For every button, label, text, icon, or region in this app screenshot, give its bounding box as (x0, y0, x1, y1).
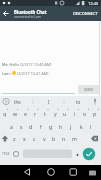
button[interactable]: m (69, 132, 79, 145)
staticText: y (54, 110, 57, 117)
staticText: u (63, 110, 67, 117)
staticText: e (24, 110, 27, 117)
button[interactable]: h (56, 120, 66, 132)
staticText: s (20, 123, 23, 130)
staticText: x (23, 135, 26, 142)
button[interactable]: e (20, 107, 30, 120)
button[interactable]: SEND (78, 85, 99, 94)
staticText: SEND (84, 87, 94, 92)
button[interactable]: n (59, 132, 69, 145)
staticText: i (74, 110, 76, 117)
staticText: d (29, 123, 33, 130)
button[interactable]: b (49, 132, 59, 145)
button[interactable]: f (36, 120, 46, 132)
staticText: q (3, 110, 7, 117)
staticText: to (76, 99, 81, 105)
button[interactable] (0, 165, 33, 180)
button[interactable]: x (19, 132, 29, 145)
button[interactable]: q (0, 107, 10, 120)
staticText: b (52, 135, 56, 142)
button[interactable]: y (50, 107, 60, 120)
staticText: Me: Hello (2, 62, 20, 67)
staticText: k (80, 123, 83, 130)
staticText: g (49, 123, 53, 130)
button[interactable]: k (76, 120, 86, 132)
button[interactable] (33, 165, 67, 180)
staticText: Bluetooth Chat (14, 9, 47, 15)
button[interactable]: o (80, 107, 90, 120)
staticText: f (40, 123, 42, 130)
staticText: w (13, 110, 18, 117)
staticText: connected to Lam (14, 15, 41, 19)
button[interactable]: i (70, 107, 80, 120)
button[interactable]: t (40, 107, 50, 120)
staticText: I (48, 99, 50, 105)
button[interactable]: DISCONNECT (73, 11, 98, 16)
staticText: z (13, 135, 16, 142)
button[interactable]: s (16, 120, 26, 132)
button[interactable] (67, 165, 101, 180)
staticText: r (34, 110, 37, 117)
staticText: p (93, 110, 97, 117)
staticText: h (59, 123, 63, 130)
button[interactable]: c (29, 132, 39, 145)
button[interactable]: d (26, 120, 36, 132)
staticText: v (43, 135, 46, 142)
button[interactable] (0, 6, 12, 21)
button[interactable] (2, 85, 75, 94)
staticText: a (10, 123, 13, 130)
button[interactable]: r (30, 107, 40, 120)
staticText: Lam: (2, 71, 12, 76)
staticText: o (83, 110, 87, 117)
staticText: the (14, 99, 21, 105)
staticText: m (72, 135, 77, 142)
staticText: ?123 (2, 151, 10, 156)
button[interactable]: a (6, 120, 16, 132)
staticText: n (62, 135, 66, 142)
button[interactable]: g (46, 120, 56, 132)
staticText: DISCONNECT (73, 11, 98, 16)
button[interactable]: l (86, 120, 96, 132)
staticText: j (70, 123, 72, 130)
staticText: c (33, 135, 36, 142)
staticText: (2/2/17 12:40 AM) (20, 62, 52, 67)
button[interactable]: z (9, 132, 19, 145)
staticText: t (44, 110, 46, 117)
button[interactable]: p (90, 107, 100, 120)
staticText: l (90, 123, 92, 130)
staticText: 12:46 (88, 1, 99, 6)
button[interactable]: w (10, 107, 20, 120)
staticText: (2/2/17 12:41 AM) (16, 71, 49, 76)
button[interactable]: j (66, 120, 76, 132)
button[interactable]: v (39, 132, 49, 145)
button[interactable]: u (60, 107, 70, 120)
